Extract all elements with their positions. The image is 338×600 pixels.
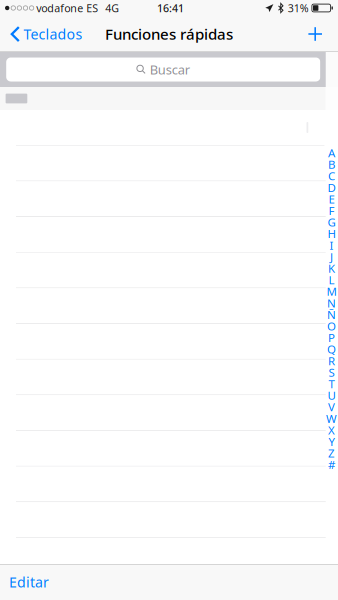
staticText: H — [327, 226, 335, 241]
button[interactable] — [0, 288, 338, 324]
staticText: V — [328, 399, 335, 415]
button[interactable]: Buscar — [6, 57, 320, 81]
button[interactable] — [0, 324, 338, 359]
staticText: N — [327, 295, 336, 311]
staticText: O — [327, 318, 336, 334]
staticText: 31% — [288, 1, 309, 15]
staticText: A — [328, 145, 335, 161]
button[interactable] — [0, 181, 338, 217]
button[interactable]: Índice alfabético — [324, 135, 338, 470]
button[interactable] — [0, 359, 338, 395]
staticText: K — [328, 260, 335, 276]
staticText: F — [328, 203, 334, 218]
button[interactable]: Añadir — [298, 16, 332, 52]
button[interactable] — [0, 395, 338, 431]
button[interactable] — [0, 538, 338, 573]
staticText: R — [328, 353, 335, 368]
staticText: S — [328, 364, 334, 380]
staticText: Buscar — [150, 61, 190, 78]
staticText: I — [329, 237, 333, 253]
staticText: Editar — [9, 572, 49, 592]
staticText: Funciones rápidas — [105, 24, 233, 44]
staticText: vodafone ES — [36, 1, 98, 15]
staticText: Ñ — [327, 307, 336, 322]
button[interactable] — [0, 431, 338, 466]
staticText: G — [327, 214, 335, 230]
staticText: # — [328, 457, 335, 472]
button[interactable]: Teclados — [0, 16, 90, 52]
staticText: U — [327, 388, 335, 403]
button[interactable] — [0, 146, 338, 181]
staticText: P — [328, 330, 335, 345]
staticText: 4G — [105, 1, 119, 15]
staticText: M — [326, 284, 336, 299]
staticText: Y — [328, 434, 334, 449]
button[interactable] — [0, 466, 338, 502]
staticText: X — [328, 422, 335, 438]
staticText: W — [326, 411, 337, 426]
button[interactable]: Editar — [0, 564, 65, 600]
staticText: T — [328, 376, 334, 392]
staticText: 16:41 — [157, 1, 184, 15]
staticText: Q — [327, 341, 336, 357]
staticText: B — [328, 157, 335, 172]
staticText: L — [328, 272, 334, 288]
button[interactable] — [0, 253, 338, 288]
staticText: C — [328, 168, 335, 184]
staticText: Teclados — [24, 24, 83, 44]
staticText: J — [330, 249, 333, 265]
staticText: Z — [328, 445, 335, 461]
staticText: D — [327, 180, 335, 195]
staticText: E — [328, 191, 334, 207]
button[interactable] — [0, 217, 338, 252]
